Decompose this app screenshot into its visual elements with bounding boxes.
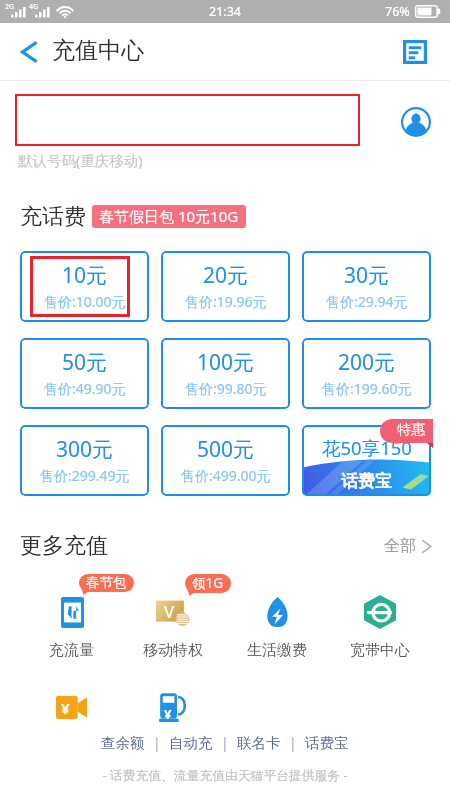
- staticText: 售价:10.00元: [44, 292, 126, 311]
- button[interactable]: 花50享150: [302, 425, 431, 496]
- staticText: 花50享150: [322, 435, 412, 460]
- button[interactable]: Recharge service: [127, 666, 219, 754]
- button[interactable]: 宽带中心: [334, 571, 426, 659]
- staticText: 50元: [62, 348, 108, 377]
- staticText: 30元: [344, 261, 390, 290]
- staticText: 300元: [56, 435, 114, 464]
- staticText: 全部: [384, 536, 416, 556]
- button[interactable]: 200元: [302, 338, 431, 409]
- staticText: 充值中心: [52, 36, 144, 65]
- button[interactable]: 联名卡: [237, 734, 281, 752]
- staticText: 售价:49.90元: [44, 379, 126, 398]
- button[interactable]: [15, 94, 360, 146]
- button[interactable]: 50元: [20, 338, 149, 409]
- staticText: 特惠: [397, 421, 425, 439]
- staticText: V: [164, 600, 175, 623]
- staticText: 移动特权: [143, 641, 203, 660]
- button[interactable]: 300元: [20, 425, 149, 496]
- staticText: |: [221, 733, 229, 752]
- staticText: 领1G: [192, 574, 224, 592]
- button[interactable]: 500元: [161, 425, 290, 496]
- button[interactable]: 话费宝: [305, 734, 349, 752]
- button[interactable]: 生活缴费: [231, 571, 323, 659]
- staticText: 76%: [385, 3, 410, 20]
- staticText: 售价:29.94元: [326, 292, 408, 311]
- staticText: 售价:199.60元: [322, 379, 412, 398]
- button[interactable]: Recharge service: [25, 666, 117, 754]
- staticText: 自动充: [169, 734, 213, 752]
- staticText: 生活缴费: [247, 641, 307, 660]
- staticText: 默认号码(重庆移动): [18, 150, 143, 170]
- staticText: 售价:99.80元: [185, 379, 267, 398]
- staticText: 售价:499.00元: [181, 466, 271, 485]
- staticText: 联名卡: [237, 734, 281, 752]
- staticText: 100元: [197, 348, 255, 377]
- staticText: 充流量: [49, 641, 94, 660]
- staticText: 春节假日包 10元10G: [99, 206, 239, 226]
- button[interactable]: 充流量: [25, 571, 117, 659]
- staticText: 春节包: [86, 574, 127, 591]
- staticText: 2G: [5, 2, 15, 12]
- staticText: 更多充值: [20, 532, 108, 560]
- staticText: 4G: [29, 2, 39, 12]
- button[interactable]: 自动充: [169, 734, 213, 752]
- staticText: |: [289, 733, 297, 752]
- staticText: - 话费充值、流量充值由天猫平台提供服务 -: [0, 766, 450, 783]
- button[interactable]: Order records: [395, 32, 435, 72]
- staticText: 话费宝: [305, 734, 349, 752]
- button[interactable]: 查余额: [101, 734, 145, 752]
- button[interactable]: 10元: [20, 251, 149, 322]
- button[interactable]: 30元: [302, 251, 431, 322]
- staticText: 话费宝: [341, 471, 392, 492]
- button[interactable]: 20元: [161, 251, 290, 322]
- staticText: ¥: [61, 698, 70, 718]
- staticText: 200元: [338, 348, 396, 377]
- staticText: 售价:19.96元: [185, 292, 267, 311]
- staticText: 21:34: [209, 3, 241, 20]
- button[interactable]: Back: [0, 28, 48, 76]
- button[interactable]: V: [127, 571, 219, 659]
- button[interactable]: Choose contact: [401, 107, 431, 137]
- staticText: ¥: [164, 705, 172, 723]
- staticText: 售价:299.49元: [40, 466, 130, 485]
- button[interactable]: 100元: [161, 338, 290, 409]
- button[interactable]: 全部: [384, 536, 432, 556]
- staticText: 宽带中心: [350, 641, 410, 660]
- button[interactable]: 春节假日包 10元10G: [99, 206, 239, 226]
- staticText: |: [153, 733, 161, 752]
- staticText: 20元: [203, 261, 249, 290]
- staticText: 查余额: [101, 734, 145, 752]
- staticText: 充话费: [20, 203, 86, 231]
- staticText: 10元: [62, 261, 108, 290]
- staticText: 500元: [197, 435, 255, 464]
